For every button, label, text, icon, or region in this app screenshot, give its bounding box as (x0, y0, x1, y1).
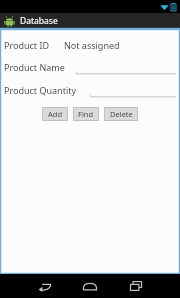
staticText: Product Quantity (4, 84, 77, 96)
staticText: Product Name (4, 61, 65, 73)
button[interactable] (90, 82, 176, 98)
staticText: Delete (110, 109, 133, 119)
button[interactable]: Find (73, 107, 99, 121)
button[interactable]: Recents (113, 274, 159, 298)
button[interactable]: Add (42, 107, 68, 121)
staticText: Find (78, 109, 94, 119)
staticText: Add (48, 109, 63, 119)
staticText: Database (20, 15, 58, 27)
button[interactable]: Delete (104, 107, 138, 121)
button[interactable] (76, 59, 176, 75)
button[interactable]: Back (21, 274, 67, 298)
button[interactable]: Home (67, 274, 113, 298)
staticText: Not assigned (64, 39, 120, 51)
staticText: Product ID (4, 39, 50, 51)
